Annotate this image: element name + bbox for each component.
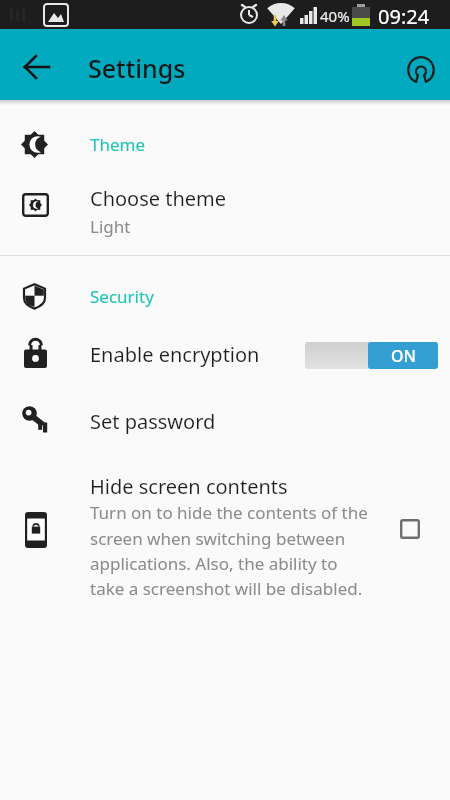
- button[interactable]: Enable encryption: [0, 322, 450, 386]
- staticText: Security: [90, 285, 154, 308]
- staticText: Set password: [90, 408, 216, 435]
- button[interactable]: [401, 50, 441, 90]
- staticText: Enable encryption: [90, 341, 260, 368]
- button[interactable]: Set password: [0, 386, 450, 456]
- staticText: Theme: [90, 133, 146, 156]
- staticText: 40%: [320, 6, 350, 26]
- staticText: ON: [391, 345, 416, 367]
- button[interactable]: [13, 43, 61, 91]
- button[interactable]: Hide screen contents: [0, 456, 450, 611]
- staticText: 09:24: [378, 3, 430, 30]
- staticText: Choose theme: [90, 185, 227, 212]
- staticText: Hide screen contents: [90, 473, 288, 500]
- staticText: Light: [90, 215, 131, 238]
- staticText: Settings: [88, 51, 186, 85]
- button[interactable]: Choose theme: [0, 168, 450, 252]
- staticText: Turn on to hide the contents of the scre…: [90, 501, 368, 600]
- button[interactable]: [400, 519, 420, 539]
- button[interactable]: ON: [305, 342, 438, 369]
